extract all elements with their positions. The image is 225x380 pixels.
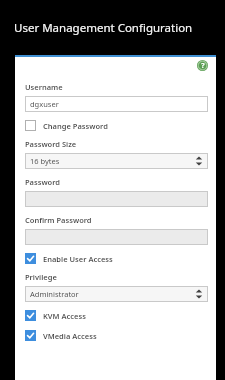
button[interactable]: dgxuser: [25, 96, 208, 112]
button[interactable]: 16 bytes: [25, 153, 208, 169]
button[interactable]: Enable User Access: [25, 252, 208, 265]
staticText: Username: [25, 82, 63, 92]
button[interactable]: [25, 229, 208, 245]
button[interactable]: KVM Access: [25, 309, 208, 322]
staticText: dgxuser: [30, 99, 59, 109]
staticText: Password: [25, 177, 61, 187]
staticText: User Management Configuration: [14, 20, 193, 36]
button[interactable]: Change Password: [25, 119, 208, 132]
button[interactable]: Help: [197, 60, 208, 71]
button[interactable]: Administrator: [25, 286, 208, 302]
staticText: ?: [201, 61, 205, 71]
staticText: Administrator: [30, 289, 79, 299]
button[interactable]: [25, 191, 208, 207]
button[interactable]: VMedia Access: [25, 329, 208, 342]
staticText: 16 bytes: [30, 156, 60, 166]
staticText: KVM Access: [43, 311, 86, 321]
staticText: Privilege: [25, 272, 57, 282]
staticText: Confirm Password: [25, 215, 92, 225]
staticText: Enable User Access: [43, 254, 113, 264]
staticText: VMedia Access: [43, 331, 97, 341]
staticText: Password Size: [25, 139, 77, 149]
staticText: Change Password: [43, 121, 108, 131]
